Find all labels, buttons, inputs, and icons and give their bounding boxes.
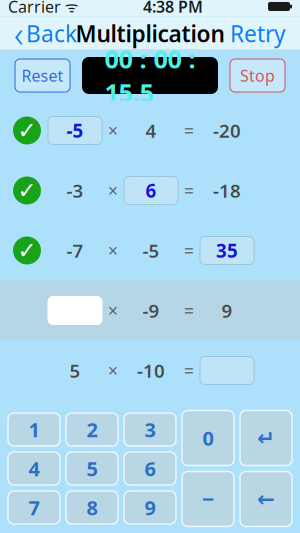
- staticText: 5: [86, 455, 97, 482]
- staticText: -3: [66, 178, 83, 203]
- staticText: ✓: [17, 238, 36, 263]
- staticText: =: [184, 179, 194, 202]
- staticText: −: [202, 485, 214, 513]
- staticText: =: [184, 239, 194, 262]
- staticText: ✓: [17, 118, 36, 143]
- staticText: 9: [144, 494, 155, 521]
- staticText: 3: [144, 416, 155, 443]
- staticText: Multiplication: [75, 18, 224, 48]
- staticText: 5: [69, 358, 80, 383]
- staticText: Carrier: [8, 0, 61, 17]
- staticText: 2: [86, 416, 97, 443]
- staticText: 35: [216, 238, 238, 263]
- staticText: 1: [28, 416, 39, 443]
- staticText: -5: [142, 238, 159, 263]
- button[interactable]: ←: [240, 471, 292, 526]
- staticText: ×: [108, 179, 118, 202]
- staticText: -10: [137, 358, 165, 383]
- staticText: ←: [257, 487, 275, 511]
- staticText: 7: [28, 494, 39, 521]
- button[interactable]: Stop: [230, 59, 285, 92]
- staticText: ×: [108, 299, 118, 322]
- button[interactable]: Reset: [15, 59, 70, 92]
- staticText: 4:38 PM: [143, 0, 203, 17]
- staticText: ×: [108, 239, 118, 262]
- button[interactable]: 3: [124, 413, 176, 446]
- staticText: =: [184, 299, 194, 322]
- button[interactable]: 5: [66, 452, 118, 485]
- staticText: -20: [213, 118, 241, 143]
- button[interactable]: 1: [8, 413, 60, 446]
- staticText: -18: [213, 178, 241, 203]
- staticText: Reset: [21, 65, 63, 86]
- button[interactable]: 9: [124, 491, 176, 524]
- button[interactable]: ↵: [240, 410, 292, 465]
- staticText: =: [184, 119, 194, 142]
- button[interactable]: ✓: [0, 100, 300, 160]
- staticText: Back: [26, 18, 77, 48]
- button[interactable]: 0: [182, 410, 234, 465]
- button[interactable]: ‹: [6, 16, 85, 50]
- staticText: 6: [145, 178, 156, 203]
- staticText: Stop: [240, 65, 275, 86]
- staticText: 9: [221, 298, 232, 323]
- staticText: 0: [202, 425, 213, 451]
- button[interactable]: 5: [0, 340, 300, 400]
- button[interactable]: Retry: [222, 16, 294, 50]
- button[interactable]: −: [182, 471, 234, 526]
- staticText: ×: [108, 119, 118, 142]
- staticText: 4: [145, 118, 156, 143]
- staticText: -7: [66, 238, 83, 263]
- staticText: -5: [66, 118, 83, 143]
- button[interactable]: [0, 280, 300, 340]
- button[interactable]: 6: [124, 452, 176, 485]
- staticText: -9: [142, 298, 159, 323]
- button[interactable]: ✓: [0, 160, 300, 220]
- button[interactable]: 2: [66, 413, 118, 446]
- button[interactable]: ✓: [0, 220, 300, 280]
- staticText: Retry: [230, 18, 286, 48]
- button[interactable]: 4: [8, 452, 60, 485]
- button[interactable]: 7: [8, 491, 60, 524]
- staticText: ᯤ: [61, 0, 78, 16]
- staticText: 00 : 00 : 15.5: [104, 42, 195, 109]
- staticText: =: [184, 359, 194, 382]
- button[interactable]: 8: [66, 491, 118, 524]
- staticText: ↵: [257, 426, 275, 450]
- staticText: ‹: [14, 10, 24, 57]
- staticText: ×: [108, 359, 118, 382]
- staticText: 4: [28, 455, 39, 482]
- staticText: 8: [86, 494, 97, 521]
- staticText: ✓: [17, 178, 36, 203]
- staticText: 6: [144, 455, 155, 482]
